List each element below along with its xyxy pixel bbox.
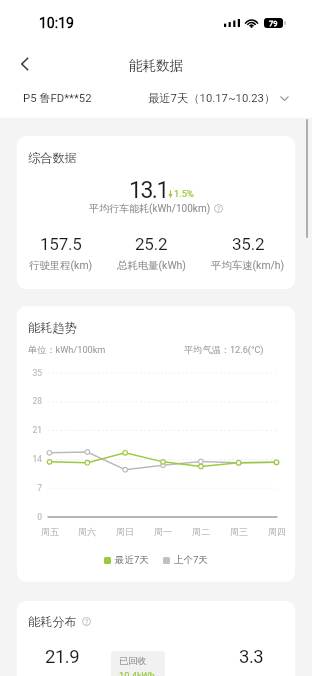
staticText: 周日: [111, 526, 139, 537]
staticText: 行驶里程(km): [29, 259, 93, 272]
button[interactable]: 最近7天（10.17~10.23）: [143, 88, 294, 108]
staticText: 已回收: [119, 655, 147, 667]
staticText: 35: [17, 368, 42, 378]
staticText: 最近7天（10.17~10.23）: [148, 91, 276, 105]
staticText: 周一: [149, 526, 177, 537]
staticText: 1.5%: [174, 188, 194, 199]
staticText: 单位：kWh/100km: [28, 344, 106, 356]
staticText: 周五: [36, 526, 64, 537]
staticText: 综合数据: [28, 150, 77, 165]
staticText: 最近7天: [115, 554, 149, 566]
staticText: 21: [17, 425, 42, 435]
staticText: 能耗分布: [28, 614, 77, 629]
staticText: 0: [17, 512, 42, 522]
staticText: 157.5: [40, 234, 82, 254]
staticText: 7: [17, 483, 42, 493]
button[interactable]: Back: [10, 49, 40, 79]
staticText: 28: [17, 396, 42, 406]
staticText: 35.2: [232, 234, 265, 254]
staticText: 平均行车能耗(kWh/100km): [89, 202, 211, 215]
staticText: 周二: [187, 526, 215, 537]
staticText: 平均车速(km/h): [211, 259, 285, 272]
button[interactable]: P5 鲁FD***52: [18, 88, 97, 108]
staticText: 10:19: [39, 15, 74, 31]
staticText: 21.9: [45, 646, 80, 668]
staticText: 79: [269, 19, 278, 28]
staticText: 上个7天: [174, 554, 208, 566]
staticText: 周六: [73, 526, 101, 537]
staticText: 3.3: [239, 646, 264, 668]
staticText: 13.1: [129, 177, 168, 204]
staticText: P5 鲁FD***52: [23, 91, 92, 105]
staticText: 周三: [225, 526, 253, 537]
staticText: 能耗趋势: [28, 320, 77, 335]
staticText: 总耗电量(kWh): [117, 259, 186, 272]
staticText: 14: [17, 454, 42, 464]
staticText: 25.2: [135, 234, 168, 254]
staticText: 10.4kWh: [119, 670, 155, 676]
staticText: 平均气温：12.6(°C): [184, 344, 264, 356]
staticText: 周四: [263, 526, 291, 537]
staticText: 能耗数据: [129, 57, 184, 74]
